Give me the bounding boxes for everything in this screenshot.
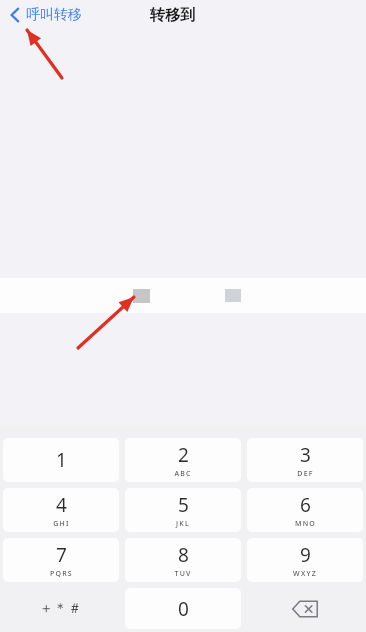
- staticText: PQRS: [50, 569, 73, 579]
- button[interactable]: Backspace: [244, 585, 366, 632]
- staticText: 8: [178, 542, 189, 568]
- staticText: 3: [300, 442, 311, 468]
- button[interactable]: 9: [247, 538, 363, 582]
- staticText: MNO: [295, 519, 316, 529]
- staticText: 0: [178, 596, 189, 622]
- staticText: 2: [178, 442, 189, 468]
- button[interactable]: 8: [125, 538, 241, 582]
- staticText: JKL: [176, 519, 190, 529]
- button[interactable]: 4: [3, 488, 119, 532]
- button[interactable]: 1: [3, 438, 119, 482]
- staticText: ABC: [174, 469, 192, 479]
- staticText: 6: [300, 492, 311, 518]
- staticText: GHI: [53, 519, 70, 529]
- staticText: TUV: [174, 569, 192, 579]
- staticText: 转移到: [150, 6, 195, 25]
- staticText: WXYZ: [293, 569, 317, 579]
- staticText: 呼叫转移: [26, 6, 82, 24]
- staticText: ＋＊＃: [39, 600, 83, 618]
- staticText: 4: [56, 492, 67, 518]
- button[interactable]: 7: [3, 538, 119, 582]
- button[interactable]: 5: [125, 488, 241, 532]
- button[interactable]: 呼叫转移: [10, 6, 82, 24]
- staticText: 7: [56, 542, 67, 568]
- staticText: 5: [178, 492, 189, 518]
- staticText: DEF: [297, 469, 314, 479]
- staticText: 9: [300, 542, 311, 568]
- button[interactable]: 2: [125, 438, 241, 482]
- button[interactable]: [0, 278, 366, 313]
- button[interactable]: ＋＊＃: [0, 585, 122, 632]
- button[interactable]: 6: [247, 488, 363, 532]
- button[interactable]: 0: [125, 588, 241, 629]
- button[interactable]: 3: [247, 438, 363, 482]
- staticText: 1: [56, 447, 67, 473]
